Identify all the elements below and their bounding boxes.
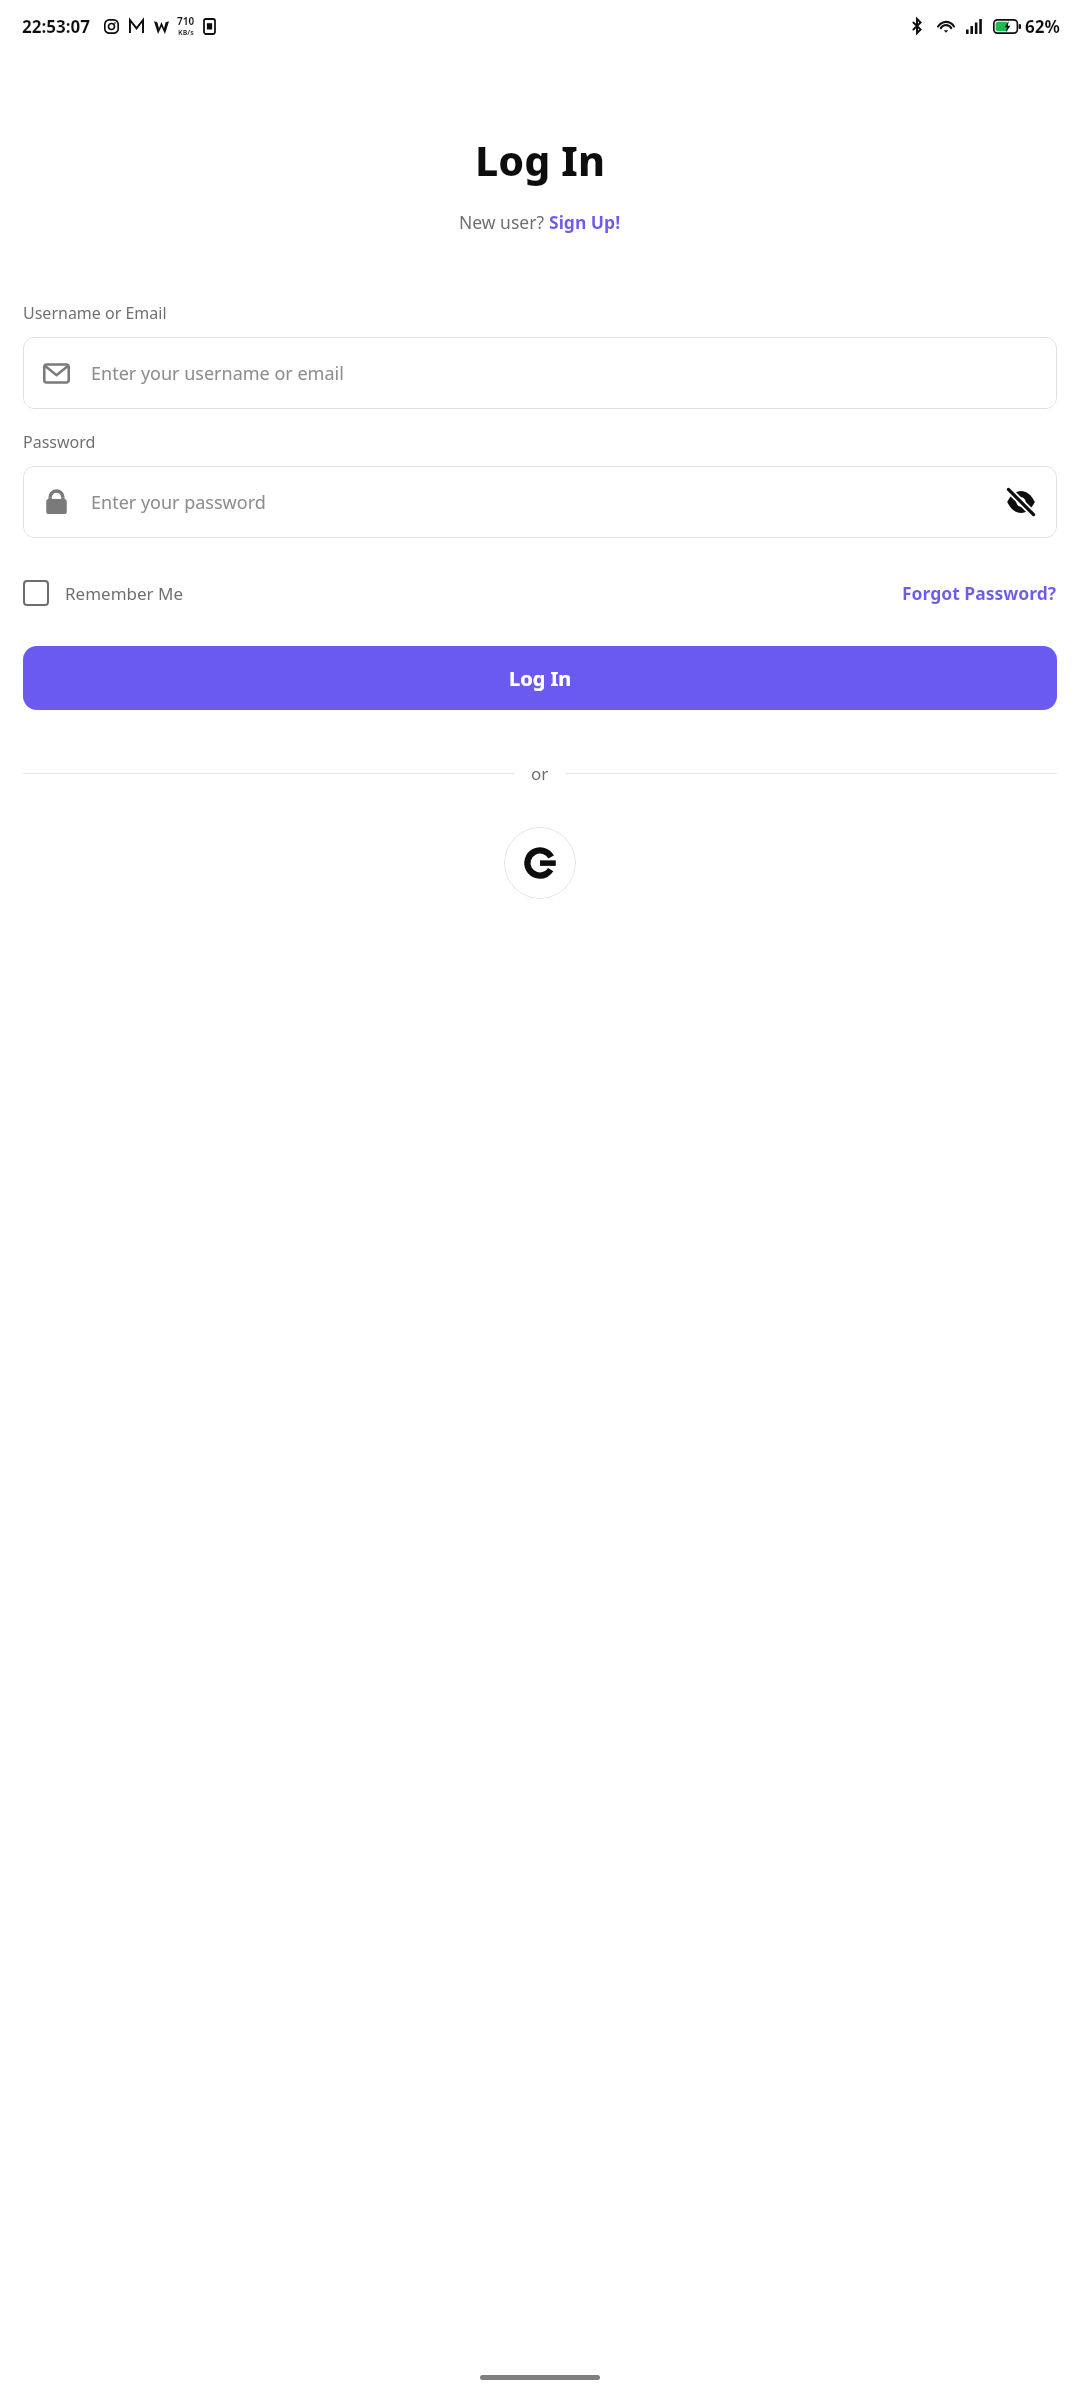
button[interactable]: Show password (1003, 484, 1039, 520)
button[interactable]: Remember Me (23, 580, 188, 606)
button[interactable]: Sign in with Google (504, 827, 576, 899)
button[interactable]: Sign Up! (549, 210, 621, 234)
button[interactable]: Enter your password (23, 466, 1057, 538)
button[interactable]: Log In (23, 646, 1057, 710)
staticText: or (531, 762, 549, 785)
staticText: New user? (459, 210, 549, 234)
staticText: 710 (177, 14, 195, 28)
staticText: Sign Up! (549, 210, 621, 234)
staticText: Log In (475, 132, 605, 188)
staticText: Remember Me (65, 582, 184, 605)
staticText: Password (23, 431, 96, 453)
staticText: Enter your password (91, 490, 266, 515)
staticText: Enter your username or email (91, 361, 344, 386)
staticText: 22:53:07 (22, 15, 90, 38)
staticText: 62% (1025, 15, 1060, 38)
button[interactable]: Forgot Password? (902, 581, 1057, 605)
staticText: Username or Email (23, 302, 167, 324)
staticText: Log In (509, 665, 572, 692)
button[interactable]: Enter your username or email (23, 337, 1057, 409)
staticText: Forgot Password? (902, 581, 1057, 605)
staticText: KB/s (178, 28, 194, 38)
